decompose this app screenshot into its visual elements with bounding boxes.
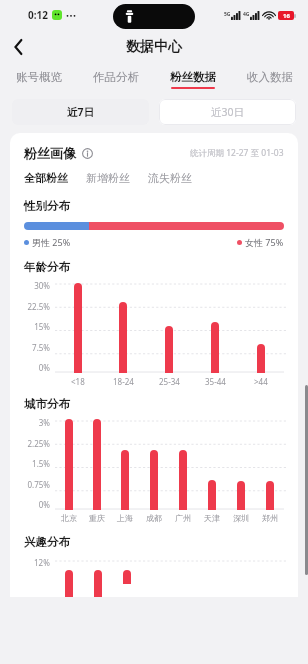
- button[interactable]: 账号概览: [0, 64, 77, 94]
- staticText: 数据中心: [126, 38, 182, 56]
- button[interactable]: 流失粉丝: [148, 171, 192, 185]
- staticText: 性别分布: [24, 199, 70, 213]
- button[interactable]: 近7日: [12, 99, 149, 125]
- staticText: 城市分布: [24, 397, 70, 411]
- button[interactable]: 收入数据: [231, 64, 308, 94]
- staticText: 30%: [34, 280, 50, 291]
- staticText: <18: [71, 376, 85, 387]
- staticText: 18-24: [113, 376, 134, 387]
- staticText: 成都: [146, 513, 162, 523]
- staticText: 天津: [204, 513, 220, 523]
- button[interactable]: 近30日: [159, 99, 296, 125]
- staticText: 收入数据: [247, 70, 293, 84]
- staticText: 兴趣分布: [24, 535, 70, 549]
- button[interactable]: 粉丝数据: [154, 64, 231, 94]
- staticText: 北京: [61, 513, 77, 523]
- staticText: 重庆: [89, 513, 105, 523]
- button[interactable]: Info: [79, 145, 95, 161]
- staticText: 作品分析: [93, 70, 139, 84]
- staticText: 深圳: [233, 513, 249, 523]
- staticText: 统计周期 12-27 至 01-03: [190, 147, 284, 159]
- staticText: 4G: [243, 11, 250, 18]
- staticText: 年龄分布: [24, 260, 70, 274]
- staticText: 粉丝数据: [170, 70, 216, 84]
- staticText: >44: [254, 376, 268, 387]
- staticText: 2.25%: [27, 438, 50, 449]
- staticText: 25-34: [159, 376, 180, 387]
- staticText: 近7日: [67, 105, 95, 119]
- staticText: 女性 75%: [245, 236, 284, 248]
- staticText: 16: [283, 12, 290, 20]
- staticText: 男性 25%: [32, 236, 71, 248]
- staticText: 7.5%: [32, 342, 50, 353]
- staticText: 账号概览: [16, 70, 62, 84]
- staticText: 15%: [34, 321, 50, 332]
- button[interactable]: 新增粉丝: [86, 171, 130, 185]
- staticText: 0.75%: [27, 479, 50, 490]
- staticText: 3%: [38, 417, 50, 428]
- staticText: 全部粉丝: [24, 171, 68, 185]
- staticText: 5G: [224, 11, 231, 18]
- button[interactable]: 全部粉丝: [24, 171, 68, 185]
- staticText: 1.5%: [32, 458, 50, 469]
- staticText: 粉丝画像: [24, 145, 76, 161]
- button[interactable]: Back: [0, 30, 36, 64]
- staticText: 流失粉丝: [148, 171, 192, 185]
- staticText: 0%: [38, 362, 50, 373]
- staticText: 12%: [34, 557, 50, 568]
- button[interactable]: 作品分析: [77, 64, 154, 94]
- staticText: 上海: [117, 513, 133, 523]
- staticText: 22.5%: [27, 301, 50, 312]
- staticText: 0:12: [28, 8, 48, 22]
- staticText: 0%: [38, 499, 50, 510]
- staticText: 郑州: [262, 513, 278, 523]
- staticText: 新增粉丝: [86, 171, 130, 185]
- staticText: 近30日: [211, 105, 245, 119]
- staticText: 广州: [175, 513, 191, 523]
- staticText: 35-44: [205, 376, 226, 387]
